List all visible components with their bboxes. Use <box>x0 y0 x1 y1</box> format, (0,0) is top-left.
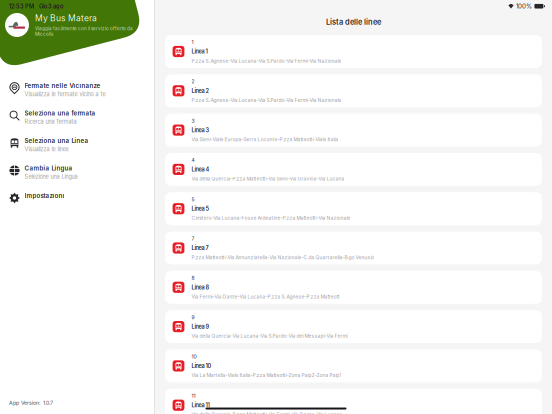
staticText: 1 <box>191 39 193 45</box>
button[interactable]: 1 <box>165 35 542 68</box>
staticText: Linea 9 <box>191 323 209 330</box>
staticText: 4 <box>191 157 194 163</box>
staticText: Linea 7 <box>191 245 208 251</box>
staticText: Linea 4 <box>191 166 209 173</box>
button[interactable]: 7 <box>165 231 542 264</box>
staticText: 5 <box>191 196 194 202</box>
staticText: Via La Martella-Viale Italia-P.zza Matte… <box>191 372 341 378</box>
button[interactable]: Fermate nelle Vicinanze <box>0 82 154 109</box>
staticText: Via della Quercia-P.zza Matteotti-Via Fe… <box>191 412 342 414</box>
button[interactable]: Seleziona una fermata <box>0 109 154 137</box>
staticText: Linea 5 <box>191 205 209 212</box>
staticText: P.zza S. Agnese-Via Lucana-Via S.Pardo-V… <box>191 97 341 103</box>
staticText: Cimitero-Via Lucana-Fosse Ardeatine-P.zz… <box>191 215 350 221</box>
staticText: Visualizza le linee <box>24 146 68 153</box>
staticText: 8 <box>191 275 194 281</box>
staticText: Via Sinni-Viale Europa-Serra Loconte-P.z… <box>191 136 338 142</box>
staticText: 100% <box>516 2 532 10</box>
staticText: Visualizza le fermate vicino a te <box>24 91 105 98</box>
staticText: Lista delle linee <box>326 17 381 26</box>
staticText: 10 <box>191 354 196 360</box>
button[interactable]: Seleziona una Linea <box>0 137 154 164</box>
button[interactable]: 8 <box>165 271 542 304</box>
staticText: 7 <box>191 236 194 242</box>
staticText: 2 <box>191 78 194 85</box>
staticText: Cambia Lingua <box>24 164 72 172</box>
staticText: My Bus Matera <box>35 13 97 23</box>
button[interactable]: 2 <box>165 74 542 107</box>
staticText: Linea 1 <box>191 48 207 55</box>
staticText: Linea 3 <box>191 127 209 134</box>
staticText: 9 <box>191 314 194 320</box>
staticText: Seleziona una Linea <box>24 137 88 144</box>
staticText: Impostazioni <box>24 192 64 199</box>
staticText: Seleziona una fermata <box>24 109 95 117</box>
staticText: Selezione una Lingua <box>24 173 77 180</box>
staticText: Linea 10 <box>191 363 211 369</box>
staticText: Via della Quercia-P.zza Matteotti-Via Si… <box>191 176 344 182</box>
staticText: P.zza S. Agnese-Via Lucana-Via S.Pardo-V… <box>191 58 341 64</box>
staticText: 3 <box>191 118 194 124</box>
staticText: 12:53 PM <box>9 3 34 10</box>
staticText: Ricerca una fermata <box>24 118 76 125</box>
staticText: Via Fermi-Via Dante-Via Lucana-P.zza S. … <box>191 294 340 300</box>
staticText: P.zza Matteotti-Via Annunziatella-Via Na… <box>191 254 374 260</box>
button[interactable]: 9 <box>165 310 542 343</box>
button[interactable]: 11 <box>165 389 542 414</box>
staticText: App Version: 1.0.7 <box>9 399 53 406</box>
staticText: Linea 11 <box>191 402 209 409</box>
staticText: Viaggia facilmente con il servizio offer… <box>35 26 133 37</box>
button[interactable]: Impostazioni <box>0 192 154 219</box>
staticText: Via della Quercia-Via Lucana-Via S.Pardo… <box>191 333 347 339</box>
button[interactable]: 3 <box>165 114 542 147</box>
button[interactable]: Cambia Lingua <box>0 164 154 192</box>
button[interactable]: 10 <box>165 349 542 382</box>
button[interactable]: 5 <box>165 192 542 225</box>
staticText: Fermate nelle Vicinanze <box>24 82 100 89</box>
button[interactable]: 4 <box>165 153 542 186</box>
staticText: 11 <box>191 393 195 399</box>
staticText: Linea 8 <box>191 284 209 291</box>
staticText: Gio 3 ago <box>39 3 63 10</box>
staticText: Linea 2 <box>191 87 208 94</box>
